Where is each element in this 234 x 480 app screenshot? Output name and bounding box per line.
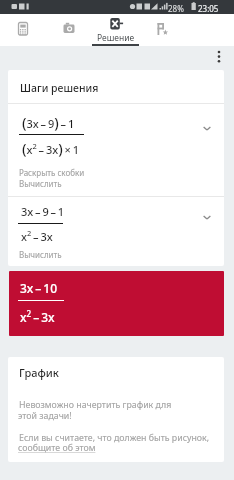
staticText: График bbox=[19, 365, 59, 380]
staticText: Вычислить bbox=[19, 249, 62, 260]
staticText: Вычислить bbox=[19, 178, 62, 189]
staticText: (3x – 9) – 1 bbox=[22, 112, 75, 132]
button[interactable]: Calculator bbox=[0, 14, 46, 46]
staticText: (x2 – 3x) × 1 bbox=[22, 138, 79, 158]
staticText: 3x – 10 bbox=[20, 280, 58, 296]
staticText: Шаги решения bbox=[20, 81, 99, 95]
staticText: этой задачи! bbox=[18, 410, 72, 422]
staticText: 3x – 9 – 1 bbox=[21, 204, 65, 219]
button[interactable]: (3x – 9) – 1 bbox=[8, 104, 224, 196]
staticText: x2 – 3x bbox=[20, 308, 55, 325]
button[interactable]: 3x – 9 – 1 bbox=[8, 197, 224, 266]
button[interactable]: More options bbox=[209, 47, 229, 67]
staticText: x2 – 3x bbox=[21, 228, 53, 244]
button[interactable]: 3x – 10 bbox=[9, 271, 224, 336]
staticText: Невозможно начертить график для bbox=[19, 399, 172, 411]
staticText: 23:05 bbox=[198, 3, 219, 14]
staticText: Если вы считаете, что должен быть рисуно… bbox=[19, 432, 210, 444]
button[interactable]: Favorites bbox=[139, 14, 185, 46]
button[interactable]: сообщите об этом bbox=[18, 442, 96, 454]
button[interactable]: Camera bbox=[46, 14, 92, 46]
staticText: 28% bbox=[168, 3, 184, 14]
button[interactable]: Решение bbox=[92, 14, 139, 46]
staticText: Раскрыть скобки bbox=[19, 167, 85, 178]
staticText: Решение bbox=[97, 32, 135, 44]
